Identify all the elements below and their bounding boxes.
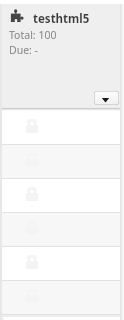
staticText: Due: -	[9, 43, 39, 57]
button[interactable]: Locked activity	[2, 111, 120, 145]
button[interactable]: Locked activity	[2, 281, 120, 315]
other: Activity type	[10, 9, 24, 23]
button[interactable]: Locked activity	[2, 179, 120, 213]
button[interactable]: Locked activity	[2, 247, 120, 281]
staticText: Total: 100	[9, 28, 57, 42]
staticText: testhtml5	[33, 11, 90, 27]
button[interactable]: Locked activity	[2, 145, 120, 179]
button[interactable]: Locked activity	[2, 213, 120, 247]
button[interactable]: More options	[94, 91, 119, 105]
